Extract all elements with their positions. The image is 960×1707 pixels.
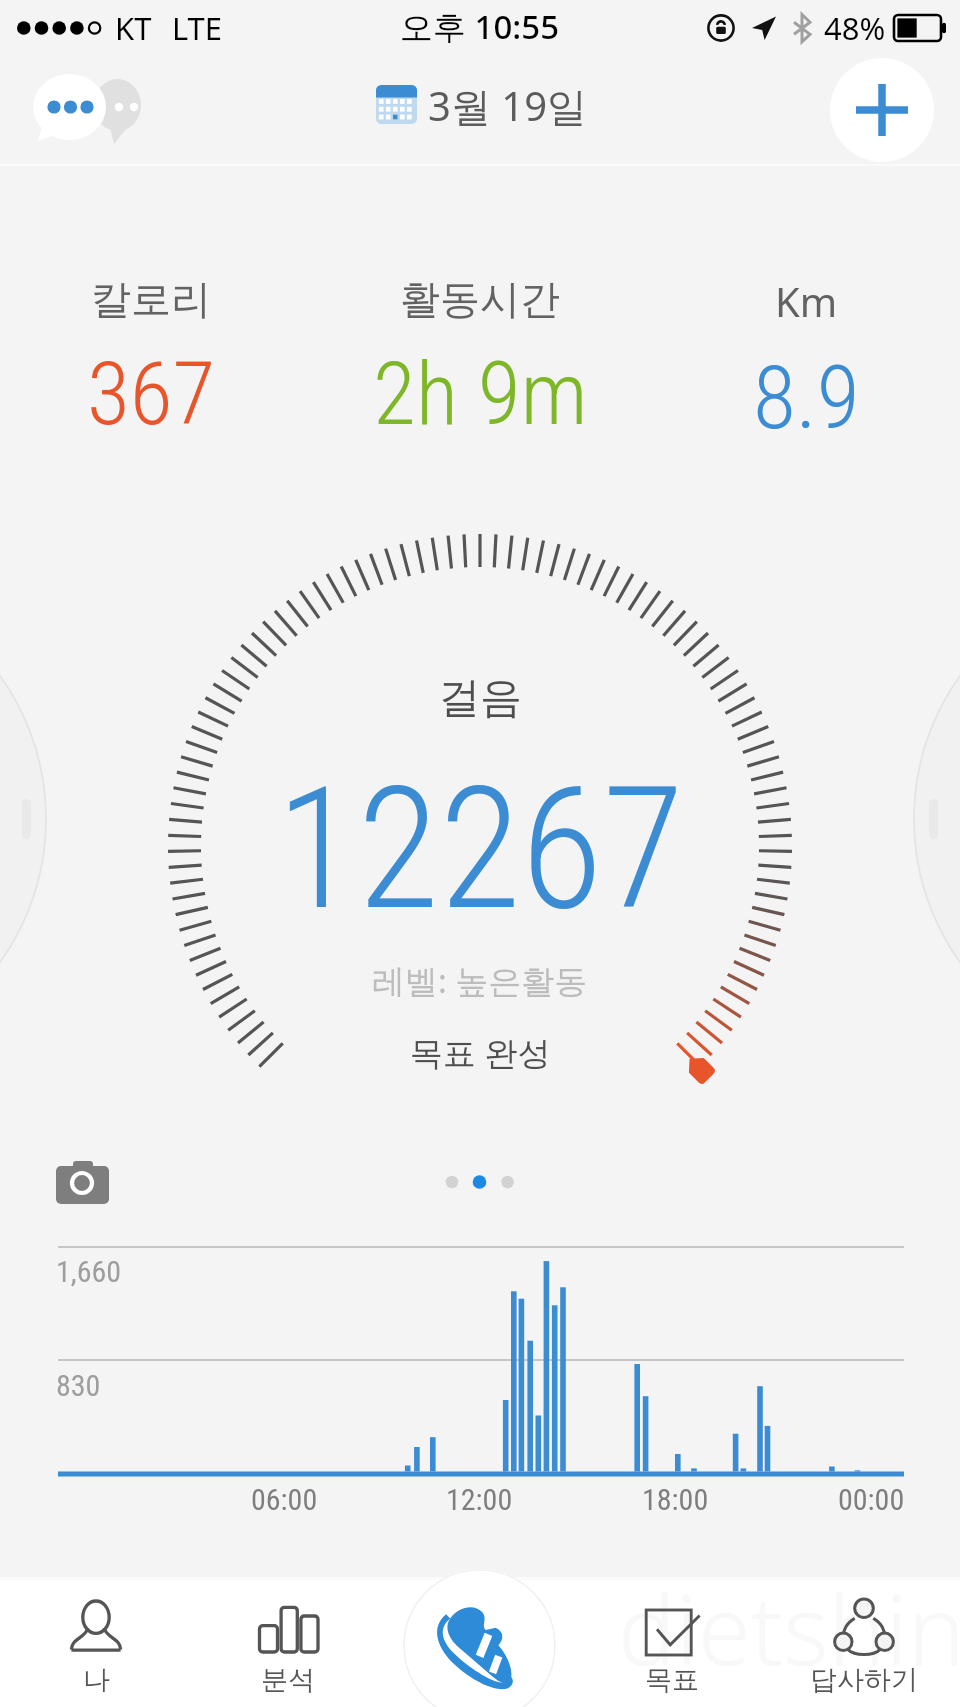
staticText: 답사하기 [810,1663,918,1697]
button[interactable]: 3월 19일 [376,78,588,133]
button[interactable]: 활동시간 [320,274,640,445]
staticText: 12:00 [446,1482,513,1517]
staticText: 칼로리 [91,274,211,324]
staticText: 목표 완성 [410,1030,551,1075]
staticText: 오후 10:55 [400,4,560,49]
staticText: 8.9 [753,346,860,449]
button[interactable]: 목표 [576,1580,768,1707]
staticText: 830 [56,1368,101,1403]
staticText: 분석 [261,1663,315,1697]
staticText: 3월 19일 [428,78,588,133]
staticText: 367 [87,342,216,445]
staticText: 나 [83,1663,110,1697]
staticText: 18:00 [642,1482,709,1517]
button[interactable]: 답사하기 [768,1580,960,1707]
button[interactable]: 분석 [192,1580,384,1707]
staticText: KT [115,7,152,49]
staticText: 걸음 [438,672,522,725]
staticText: Km [775,274,838,328]
staticText: 48% [824,7,886,49]
button[interactable]: Steps [403,1569,556,1707]
staticText: 활동시간 [400,274,560,324]
staticText: 1,660 [56,1254,122,1289]
button[interactable]: Messages [30,69,146,149]
button[interactable]: 칼로리 [0,274,311,445]
staticText: 06:00 [251,1482,318,1517]
staticText: 목표 [645,1663,699,1697]
staticText: 2h 9m [373,342,588,445]
staticText: 레벨: 높은활동 [372,958,588,1003]
button[interactable]: Km [646,274,960,449]
button[interactable]: Camera [56,1161,109,1204]
button[interactable]: 나 [0,1580,192,1707]
button[interactable]: Add [830,58,934,162]
staticText: dietshin [618,1562,960,1689]
staticText: 00:00 [838,1482,905,1517]
staticText: 12267 [276,751,685,948]
staticText: LTE [172,7,223,49]
